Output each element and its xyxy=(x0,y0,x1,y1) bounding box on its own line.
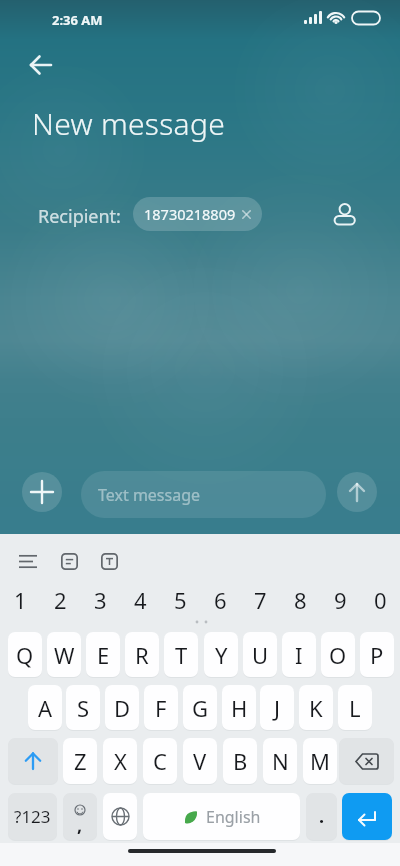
button[interactable]: ?123 xyxy=(8,793,57,840)
button[interactable]: J xyxy=(260,685,294,730)
button[interactable]: T xyxy=(164,632,198,677)
staticText: 4 xyxy=(134,585,147,615)
staticText: 1 xyxy=(14,585,27,615)
staticText: 18730218809 xyxy=(144,204,236,224)
button[interactable]: , xyxy=(63,793,97,840)
button[interactable]: V xyxy=(183,738,217,784)
button[interactable]: 2 xyxy=(40,580,80,620)
button[interactable] xyxy=(22,472,62,512)
button[interactable]: 1 xyxy=(0,580,40,620)
button[interactable] xyxy=(342,793,392,840)
button[interactable]: M xyxy=(303,738,337,784)
button[interactable]: G xyxy=(183,685,217,730)
button[interactable]: 9 xyxy=(320,580,360,620)
staticText: I xyxy=(295,640,303,670)
button[interactable] xyxy=(20,45,60,85)
button[interactable]: S xyxy=(66,685,100,730)
button[interactable]: D xyxy=(105,685,139,730)
button[interactable]: O xyxy=(321,632,355,677)
button[interactable]: Text message xyxy=(81,471,326,518)
staticText: P xyxy=(370,640,384,670)
staticText: C xyxy=(153,746,167,776)
button[interactable]: U xyxy=(243,632,277,677)
button[interactable] xyxy=(51,545,87,577)
staticText: 8 xyxy=(294,585,307,615)
button[interactable]: L xyxy=(338,685,372,730)
staticText: N xyxy=(272,746,289,776)
staticText: New message xyxy=(32,103,226,144)
staticText: D xyxy=(114,693,131,723)
button[interactable]: K xyxy=(299,685,333,730)
staticText: 6 xyxy=(214,585,227,615)
staticText: E xyxy=(97,640,110,670)
button[interactable]: . xyxy=(306,793,337,840)
button[interactable]: B xyxy=(223,738,257,784)
button[interactable]: 3 xyxy=(80,580,120,620)
button[interactable]: E xyxy=(86,632,120,677)
button[interactable]: 5 xyxy=(160,580,200,620)
staticText: Y xyxy=(215,640,228,670)
button[interactable]: 6 xyxy=(200,580,240,620)
button[interactable]: N xyxy=(263,738,297,784)
staticText: 5 xyxy=(174,585,187,615)
button[interactable] xyxy=(337,472,377,512)
staticText: Q xyxy=(16,640,34,670)
button[interactable] xyxy=(339,738,394,784)
staticText: U xyxy=(252,640,269,670)
button[interactable]: 18730218809 xyxy=(133,197,262,231)
button[interactable]: Y xyxy=(204,632,238,677)
staticText: Recipient: xyxy=(38,204,121,229)
button[interactable]: P xyxy=(360,632,394,677)
staticText: V xyxy=(193,746,207,776)
staticText: 2 xyxy=(54,585,67,615)
button[interactable] xyxy=(8,738,58,784)
staticText: Text message xyxy=(98,484,201,506)
button[interactable]: C xyxy=(143,738,177,784)
staticText: G xyxy=(192,693,209,723)
staticText: L xyxy=(349,693,361,723)
button[interactable]: H xyxy=(222,685,256,730)
staticText: . xyxy=(319,804,325,829)
staticText: A xyxy=(38,693,53,723)
staticText: H xyxy=(231,693,248,723)
staticText: Z xyxy=(74,746,87,776)
button[interactable] xyxy=(10,545,46,577)
staticText: 2:36 AM xyxy=(52,11,103,29)
staticText: K xyxy=(309,693,323,723)
staticText: , xyxy=(77,813,83,838)
button[interactable]: W xyxy=(47,632,81,677)
staticText: O xyxy=(329,640,347,670)
button[interactable]: 0 xyxy=(360,580,400,620)
staticText: 0 xyxy=(374,585,387,615)
staticText: J xyxy=(274,693,281,723)
button[interactable]: 7 xyxy=(240,580,280,620)
staticText: M xyxy=(310,746,330,776)
staticText: W xyxy=(54,640,75,670)
button[interactable]: F xyxy=(144,685,178,730)
button[interactable]: 8 xyxy=(280,580,320,620)
button[interactable] xyxy=(91,545,127,577)
button[interactable]: I xyxy=(282,632,316,677)
button[interactable] xyxy=(103,793,137,840)
staticText: T xyxy=(175,640,188,670)
staticText: F xyxy=(155,693,167,723)
button[interactable]: English xyxy=(143,793,300,840)
staticText: X xyxy=(114,746,127,776)
staticText: 7 xyxy=(254,585,267,615)
button[interactable]: 4 xyxy=(120,580,160,620)
staticText: R xyxy=(135,640,149,670)
staticText: 9 xyxy=(334,585,347,615)
staticText: S xyxy=(77,693,90,723)
button[interactable]: R xyxy=(125,632,159,677)
button[interactable]: Q xyxy=(8,632,42,677)
staticText: ?123 xyxy=(14,805,51,828)
staticText: 3 xyxy=(94,585,107,615)
staticText: English xyxy=(206,806,261,828)
button[interactable] xyxy=(327,194,367,234)
staticText: B xyxy=(233,746,248,776)
button[interactable]: X xyxy=(103,738,137,784)
button[interactable]: A xyxy=(28,685,62,730)
button[interactable]: Z xyxy=(63,738,97,784)
